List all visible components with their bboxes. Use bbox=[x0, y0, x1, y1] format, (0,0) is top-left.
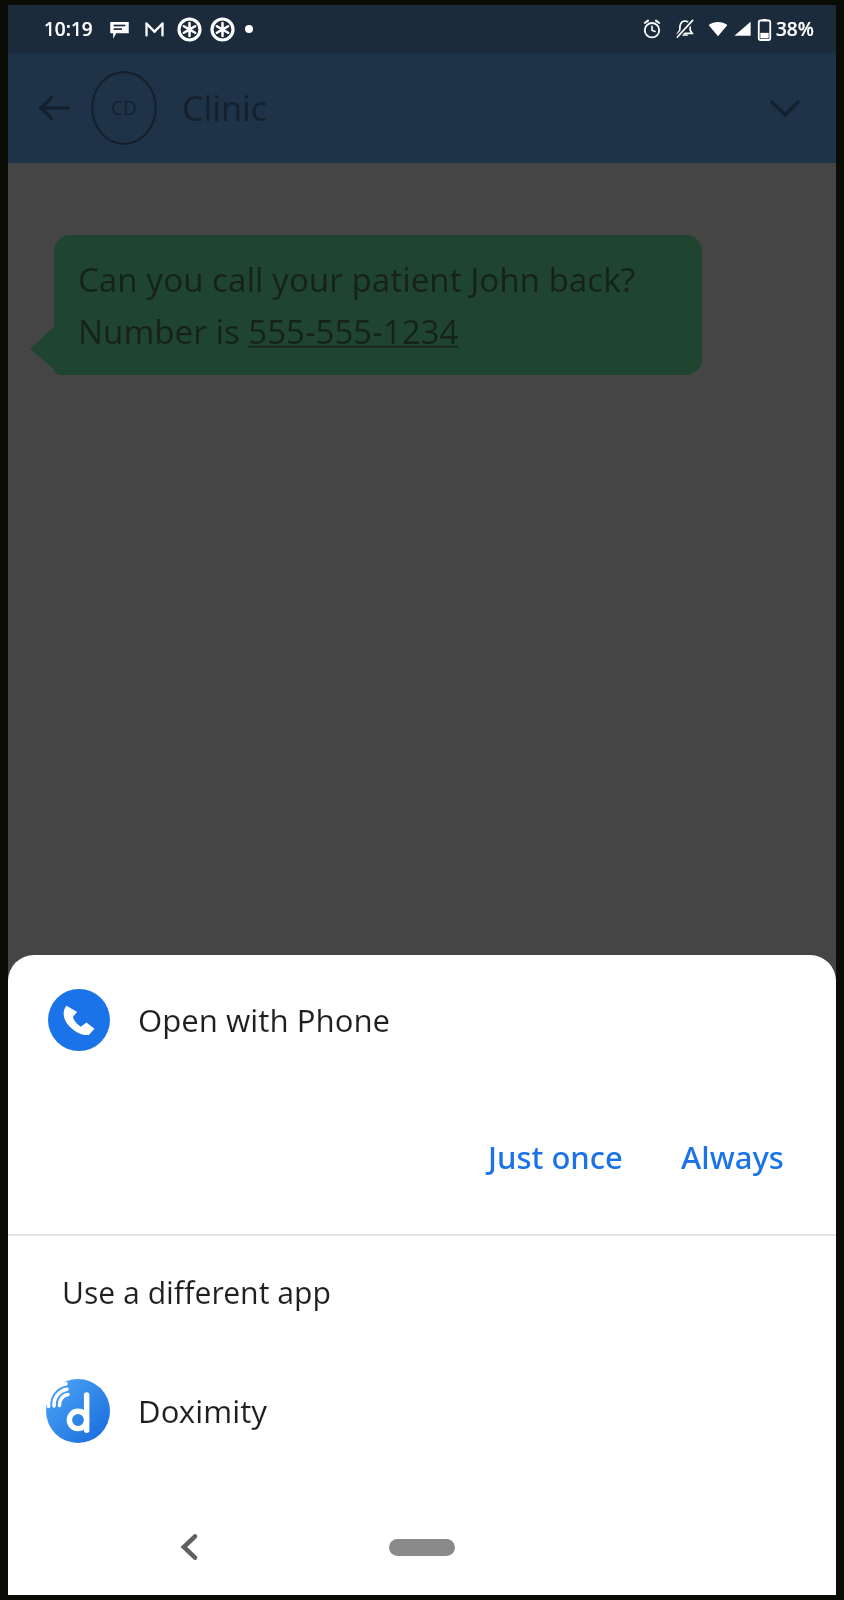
button[interactable]: Home bbox=[389, 1539, 455, 1556]
staticText: 38% bbox=[776, 16, 814, 42]
button[interactable]: Just once bbox=[472, 1122, 639, 1192]
staticText: Always bbox=[681, 1136, 784, 1178]
staticText: CD bbox=[111, 95, 137, 121]
staticText: Clinic bbox=[182, 85, 268, 131]
button[interactable]: Always bbox=[665, 1122, 800, 1192]
staticText: 10:19 bbox=[44, 16, 93, 42]
button[interactable]: Back bbox=[26, 80, 82, 136]
staticText: Use a different app bbox=[62, 1272, 332, 1313]
staticText: Doximity bbox=[138, 1390, 268, 1432]
button[interactable]: Expand details bbox=[756, 79, 814, 137]
button[interactable]: Doximity bbox=[8, 1361, 836, 1461]
staticText: Open with Phone bbox=[138, 999, 391, 1041]
button[interactable]: Can you call your patient John back? Num… bbox=[54, 235, 702, 375]
staticText: Can you call your patient John back? Num… bbox=[78, 257, 678, 353]
button[interactable]: Open with Phone bbox=[8, 955, 836, 1085]
staticText: Just once bbox=[488, 1136, 623, 1178]
button[interactable]: Back bbox=[158, 1515, 222, 1579]
